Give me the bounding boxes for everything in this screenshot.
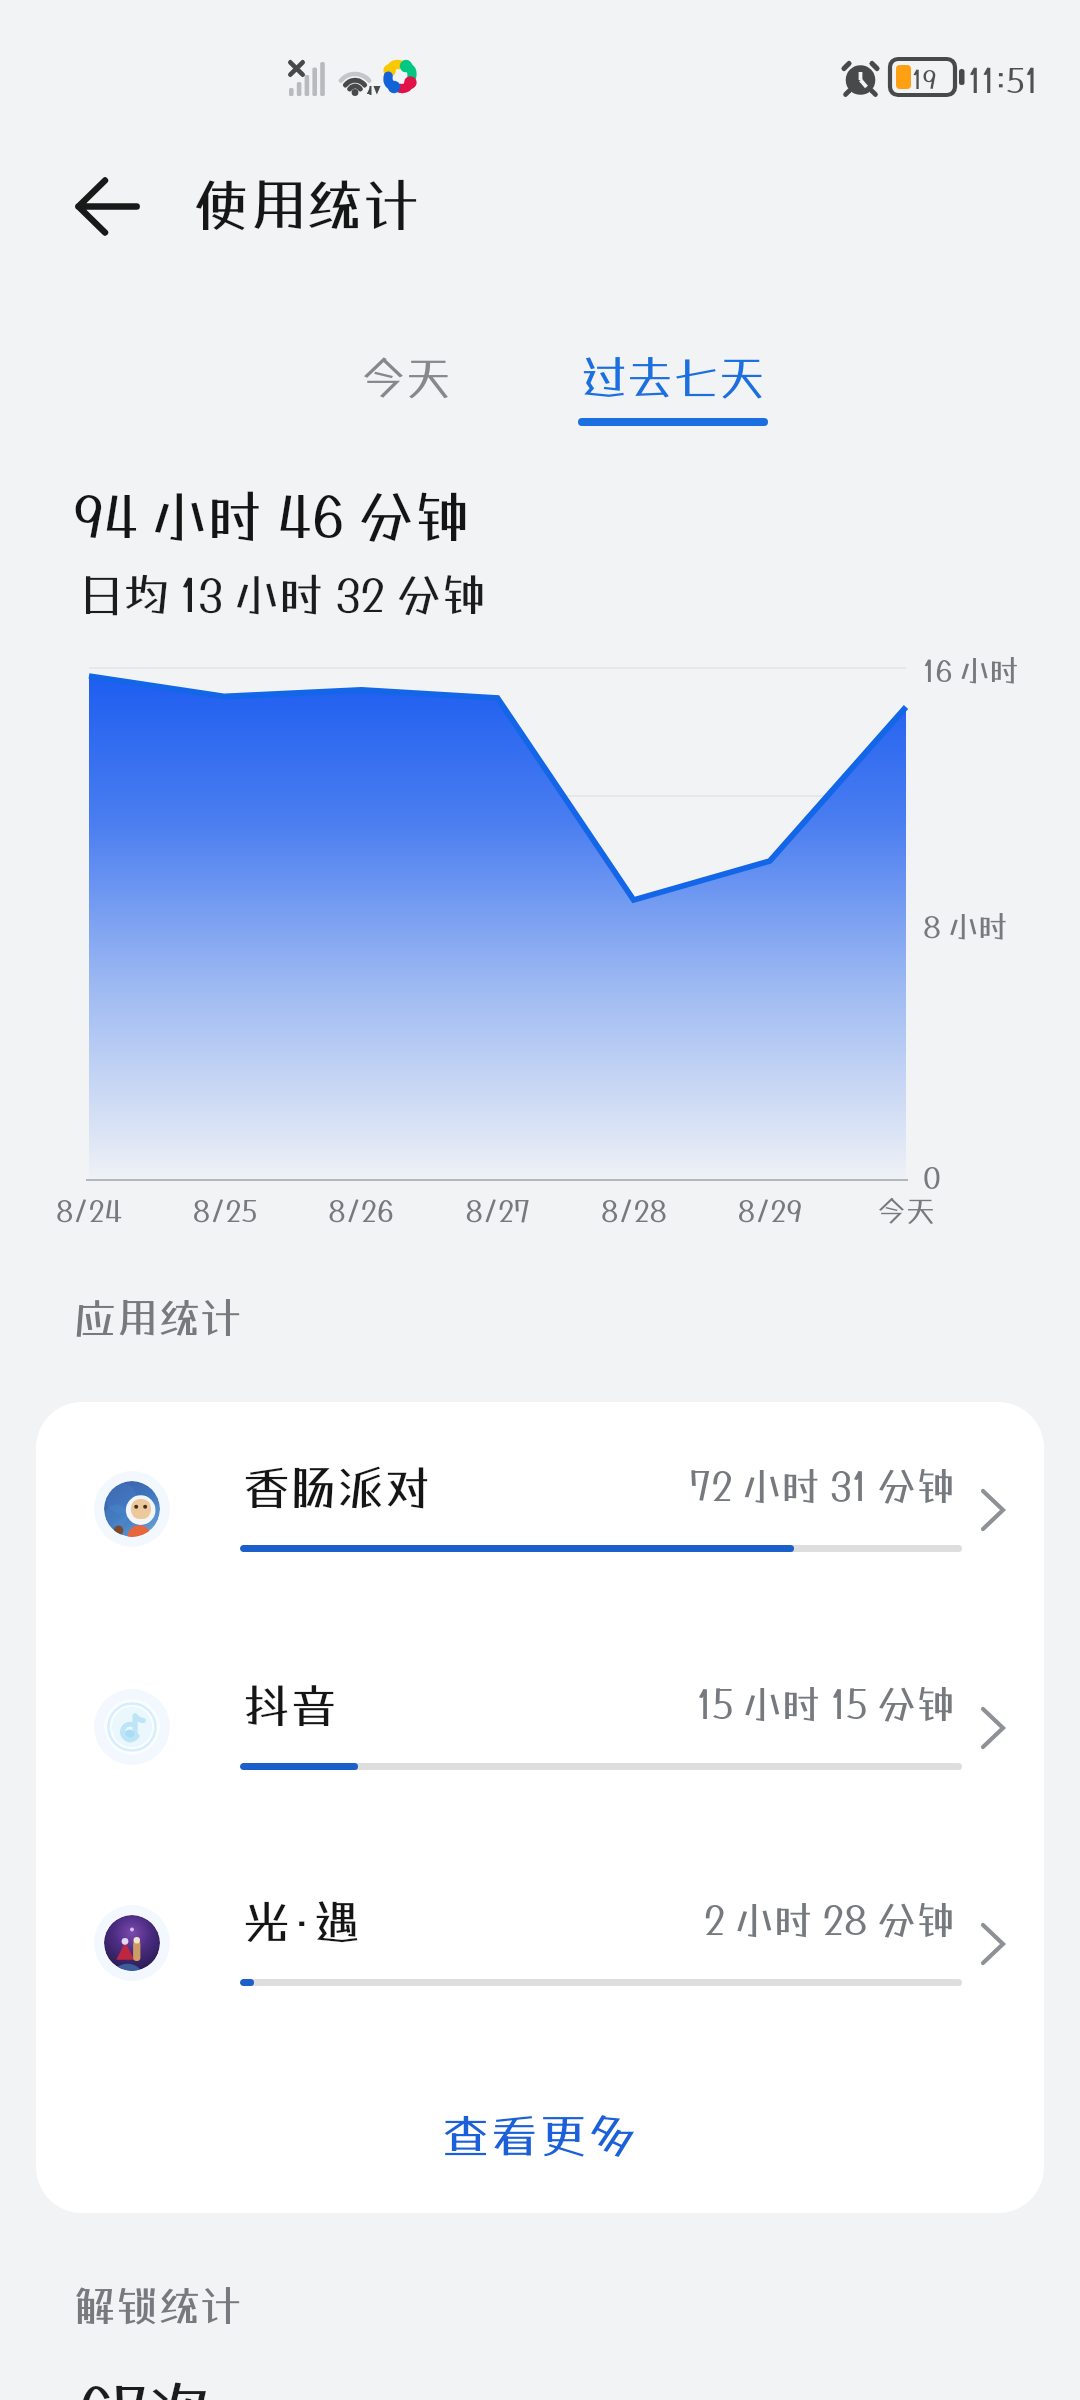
button[interactable]: 今天 xyxy=(331,332,481,422)
staticText: 16 小时 xyxy=(923,653,1020,688)
staticText: 8/28 xyxy=(564,1194,704,1228)
staticText: 94 小时 46 分钟 xyxy=(73,483,470,549)
staticText: 今天 xyxy=(836,1194,976,1228)
staticText: 日均 13 小时 32 分钟 xyxy=(79,568,487,621)
staticText: 67次 xyxy=(77,2373,211,2400)
button[interactable]: 光·遇 xyxy=(36,1836,1044,2053)
staticText: 15 小时 15 分钟 xyxy=(466,1681,955,1727)
staticText: 8/29 xyxy=(700,1194,840,1228)
staticText: 19 xyxy=(912,63,937,94)
staticText: 11:51 xyxy=(968,60,1039,100)
button[interactable]: Details for 抖音 xyxy=(955,1690,1031,1766)
staticText: 解锁统计 xyxy=(74,2281,243,2331)
button[interactable]: 过去七天 xyxy=(578,328,768,426)
staticText: 使用统计 xyxy=(192,171,420,238)
staticText: 2 小时 28 分钟 xyxy=(466,1897,955,1943)
staticText: 抖音 xyxy=(243,1678,337,1733)
staticText: 8/26 xyxy=(291,1194,431,1228)
staticText: 应用统计 xyxy=(74,1293,243,1343)
staticText: 光·遇 xyxy=(243,1894,361,1949)
staticText: 香肠派对 xyxy=(243,1460,431,1515)
staticText: 8/27 xyxy=(428,1194,568,1228)
staticText: 8/25 xyxy=(155,1194,295,1228)
button[interactable]: Details for 香肠派对 xyxy=(955,1472,1031,1548)
button[interactable]: 香肠派对 xyxy=(36,1402,1044,1619)
button[interactable]: 查看更多 xyxy=(36,2072,1044,2198)
staticText: 查看更多 xyxy=(442,2108,638,2163)
staticText: 0 xyxy=(923,1160,941,1195)
staticText: 72 小时 31 分钟 xyxy=(466,1463,955,1509)
button[interactable]: 抖音 xyxy=(36,1620,1044,1837)
button[interactable]: Details for 光·遇 xyxy=(955,1906,1031,1982)
staticText: 8/24 xyxy=(19,1194,159,1228)
staticText: 过去七天 xyxy=(581,350,765,404)
button[interactable]: Back xyxy=(44,152,172,262)
staticText: 8 小时 xyxy=(923,909,1009,944)
staticText: 今天 xyxy=(361,351,452,404)
